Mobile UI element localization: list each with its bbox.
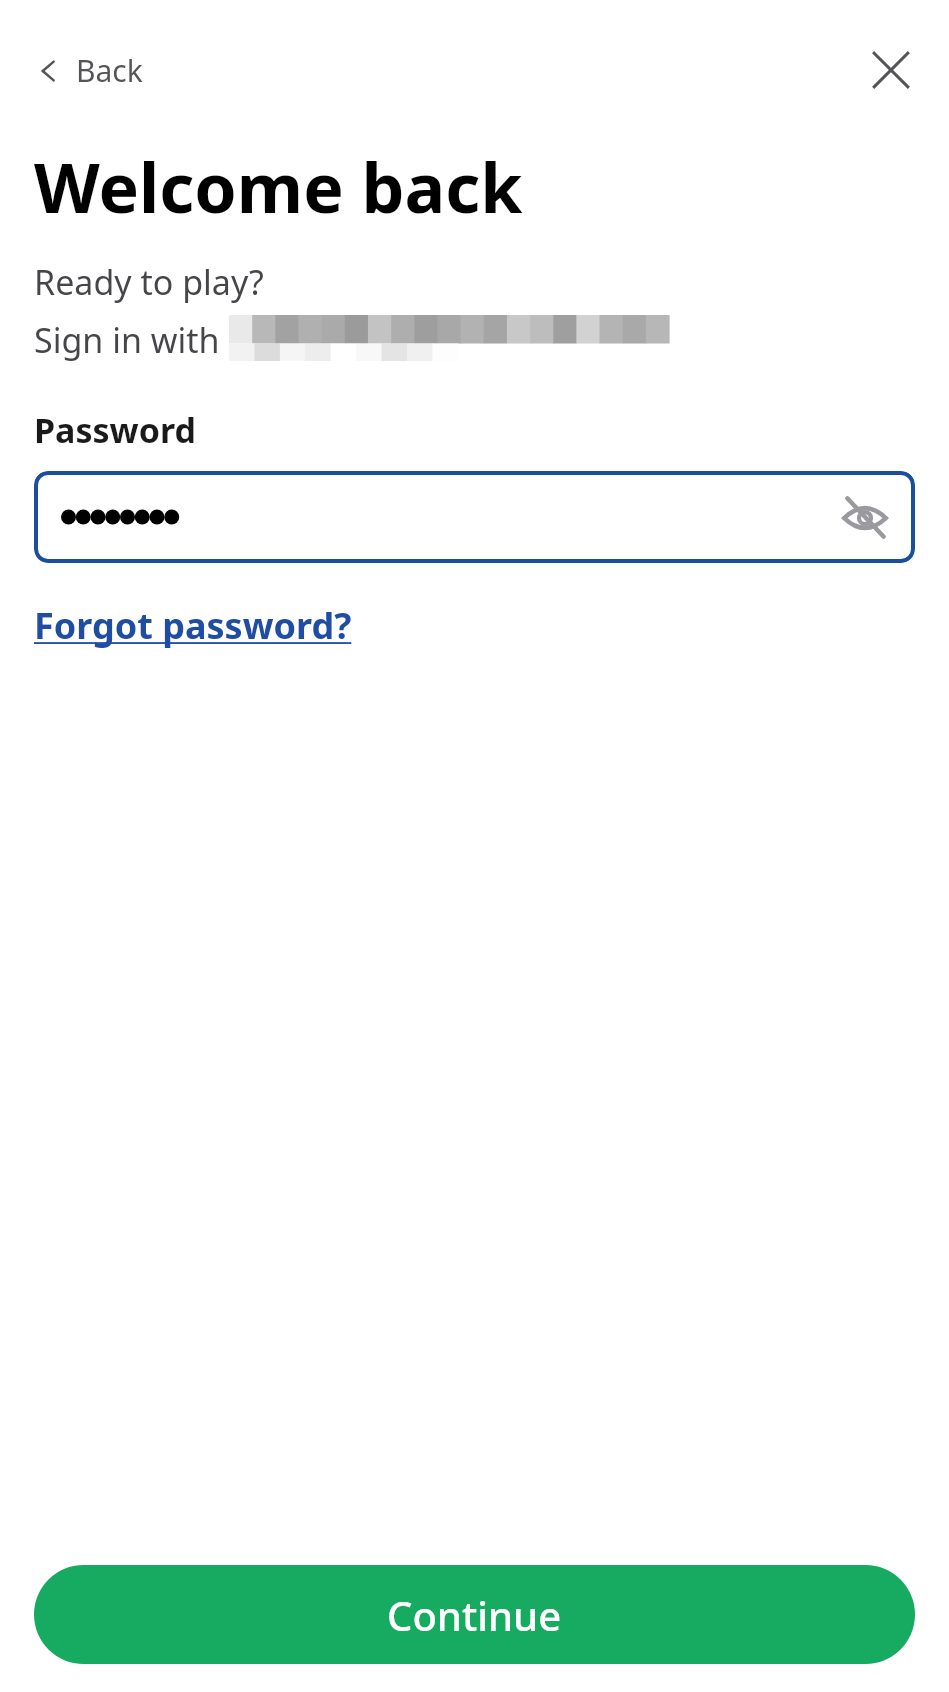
button[interactable]: Close <box>857 36 925 104</box>
button[interactable]: Back <box>24 40 155 101</box>
staticText: Ready to play? <box>34 259 264 305</box>
staticText: Sign in with <box>34 317 229 363</box>
staticText: Welcome back <box>34 140 523 233</box>
staticText: Continue <box>387 1588 562 1642</box>
staticText: Forgot password? <box>34 601 352 650</box>
button[interactable]: Show password <box>34 471 915 563</box>
button[interactable]: Forgot password? <box>34 597 352 654</box>
staticText: Password <box>34 407 196 453</box>
button[interactable]: Show password <box>829 481 901 553</box>
staticText: Back <box>76 50 143 91</box>
button[interactable]: Continue <box>34 1565 915 1664</box>
